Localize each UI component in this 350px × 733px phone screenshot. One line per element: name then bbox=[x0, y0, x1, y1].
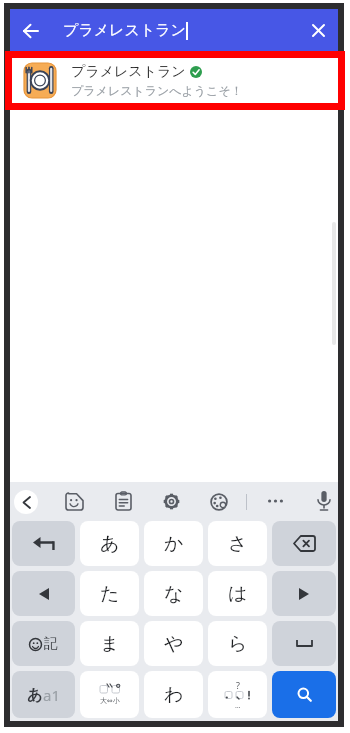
button[interactable]: な bbox=[144, 571, 203, 616]
staticText: わ bbox=[164, 683, 184, 707]
staticText: は bbox=[228, 582, 248, 606]
staticText: た bbox=[100, 582, 120, 606]
staticText: ? bbox=[236, 679, 240, 691]
button[interactable] bbox=[10, 9, 52, 52]
button[interactable] bbox=[298, 9, 338, 52]
button[interactable] bbox=[116, 492, 131, 510]
staticText: な bbox=[164, 582, 184, 606]
button[interactable]: 大⇔小 bbox=[80, 671, 139, 718]
staticText: ら bbox=[228, 632, 248, 656]
staticText: … bbox=[235, 701, 241, 711]
staticText: さ bbox=[228, 532, 248, 556]
staticText: プラメレストラン bbox=[71, 63, 186, 81]
staticText: あ bbox=[100, 532, 120, 556]
staticText: 記 bbox=[44, 635, 58, 653]
button[interactable]: ま bbox=[80, 621, 139, 666]
staticText: 大⇔小 bbox=[100, 696, 120, 705]
button[interactable] bbox=[14, 490, 38, 514]
button[interactable] bbox=[318, 491, 330, 511]
button[interactable] bbox=[210, 493, 228, 511]
button[interactable]: ? bbox=[208, 671, 267, 718]
button[interactable]: た bbox=[80, 571, 139, 616]
button[interactable]: は bbox=[208, 571, 267, 616]
button[interactable] bbox=[268, 499, 283, 503]
button[interactable]: さ bbox=[208, 521, 267, 566]
button[interactable]: プラメレストラン bbox=[12, 58, 338, 103]
staticText: ま bbox=[100, 632, 120, 656]
button[interactable] bbox=[12, 571, 75, 616]
staticText: プラメレストランへようこそ！ bbox=[71, 83, 243, 98]
button[interactable] bbox=[272, 521, 336, 566]
button[interactable] bbox=[163, 493, 180, 510]
button[interactable]: ら bbox=[208, 621, 267, 666]
button[interactable]: か bbox=[144, 521, 203, 566]
staticText: や bbox=[164, 632, 184, 656]
button[interactable] bbox=[66, 493, 83, 510]
button[interactable] bbox=[12, 521, 75, 566]
button[interactable]: あ bbox=[80, 521, 139, 566]
staticText: プラメレストラン bbox=[63, 21, 186, 40]
staticText: か bbox=[164, 532, 184, 556]
staticText: あ bbox=[27, 686, 43, 705]
button[interactable] bbox=[272, 671, 336, 718]
button[interactable] bbox=[272, 621, 336, 666]
button[interactable]: 記 bbox=[12, 621, 75, 666]
staticText: a1 bbox=[43, 685, 60, 705]
button[interactable]: や bbox=[144, 621, 203, 666]
button[interactable]: わ bbox=[144, 671, 203, 718]
button[interactable] bbox=[272, 571, 336, 616]
button[interactable]: あ bbox=[12, 671, 75, 718]
